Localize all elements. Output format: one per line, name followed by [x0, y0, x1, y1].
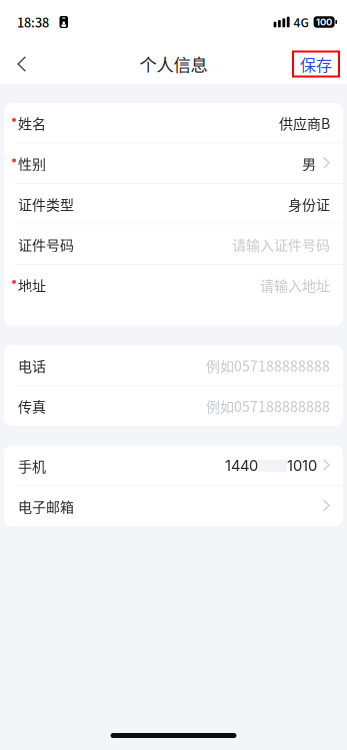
- staticText: 例如057188888888: [206, 355, 330, 376]
- staticText: 男: [302, 153, 316, 173]
- staticText: 电话: [18, 355, 46, 376]
- button[interactable]: 地址: [4, 265, 343, 326]
- staticText: 证件号码: [18, 234, 74, 254]
- button[interactable]: 电话: [4, 346, 343, 385]
- button[interactable]: 姓名: [4, 103, 343, 143]
- staticText: 请输入地址: [260, 275, 330, 295]
- staticText: 传真: [18, 396, 46, 416]
- button[interactable]: 证件号码: [4, 224, 343, 264]
- staticText: 请输入证件号码: [232, 234, 330, 254]
- staticText: 18:38: [17, 13, 49, 31]
- staticText: 供应商B: [279, 113, 330, 133]
- button[interactable]: 返回: [0, 44, 40, 84]
- staticText: 姓名: [18, 113, 46, 133]
- staticText: 手机: [18, 455, 46, 476]
- staticText: 1440: [225, 457, 258, 474]
- staticText: 性别: [18, 153, 46, 173]
- button[interactable]: 手机: [4, 446, 343, 485]
- staticText: 4G: [294, 13, 309, 31]
- staticText: 地址: [18, 275, 46, 295]
- staticText: 身份证: [288, 194, 330, 214]
- button[interactable]: 证件类型: [4, 184, 343, 224]
- staticText: 例如057188888888: [206, 396, 330, 416]
- button[interactable]: 传真: [4, 386, 343, 426]
- staticText: 保存: [300, 52, 332, 76]
- button[interactable]: 保存: [291, 49, 347, 78]
- staticText: 1010: [287, 457, 317, 474]
- staticText: 证件类型: [18, 194, 74, 214]
- button[interactable]: 性别: [4, 143, 343, 183]
- staticText: 电子邮箱: [18, 496, 74, 516]
- staticText: 个人信息: [139, 51, 207, 77]
- staticText: 100: [316, 16, 332, 28]
- button[interactable]: 电子邮箱: [4, 486, 343, 526]
